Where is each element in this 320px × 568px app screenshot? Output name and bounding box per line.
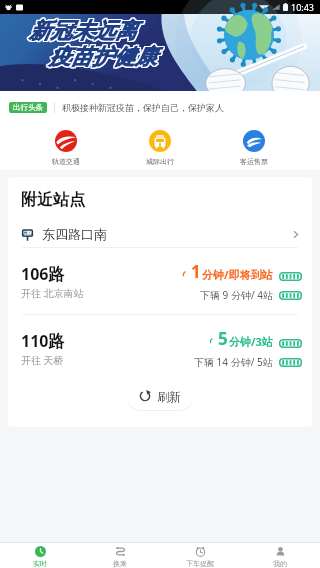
staticText: 新冠未远离	[29, 18, 137, 45]
staticText: 疫苗护健康	[49, 44, 157, 71]
staticText: 积极接种新冠疫苗，保护自己，保护家人	[62, 102, 224, 113]
staticText: 疫苗护健康	[50, 42, 158, 69]
staticText: 新冠未远离	[29, 17, 137, 44]
staticText: 新冠未远离	[30, 18, 138, 45]
button[interactable]: 客运售票	[226, 123, 282, 166]
staticText: 新冠未远离	[28, 16, 136, 43]
staticText: 出行头条	[13, 103, 43, 112]
staticText: 分钟/3站	[229, 334, 273, 349]
staticText: 1	[191, 260, 201, 283]
staticText: 疫苗护健康	[48, 43, 156, 70]
staticText: 106路	[21, 263, 65, 285]
button[interactable]: 出行头条	[0, 91, 320, 123]
staticText: 10:43	[291, 1, 315, 13]
staticText: 新冠未远离	[29, 16, 137, 43]
staticText: 分钟/即将到站	[202, 267, 273, 282]
staticText: 开往 北京南站	[21, 286, 84, 300]
staticText: 轨道交通	[52, 157, 80, 166]
staticText: 疫苗护健康	[48, 42, 156, 69]
button[interactable]: 东四路口南	[8, 223, 312, 245]
staticText: 实时	[33, 559, 47, 568]
staticText: 疫苗护健康	[49, 43, 157, 70]
staticText: 附近站点	[21, 190, 85, 210]
staticText: 下辆 9 分钟/ 4站	[200, 288, 273, 302]
staticText: 下辆 14 分钟/ 5站	[194, 355, 273, 369]
button[interactable]: 110路	[8, 315, 312, 381]
staticText: 新冠未远离	[30, 16, 138, 43]
button[interactable]: 实时	[0, 543, 80, 568]
button[interactable]: 城际出行	[132, 123, 188, 166]
staticText: 新冠未远离	[28, 18, 136, 45]
staticText: 东四路口南	[42, 226, 107, 242]
button[interactable]: 刷新	[127, 382, 193, 410]
staticText: 疫苗护健康	[50, 44, 158, 71]
staticText: 5	[218, 327, 228, 350]
button[interactable]: 下车提醒	[160, 543, 240, 568]
staticText: 疫苗护健康	[50, 43, 158, 70]
staticText: 110路	[21, 330, 65, 352]
staticText: 换乘	[113, 559, 127, 568]
staticText: 客运售票	[240, 157, 268, 166]
button[interactable]: 换乘	[80, 543, 160, 568]
button[interactable]: 轨道交通	[38, 123, 94, 166]
staticText: 城际出行	[146, 157, 174, 166]
staticText: 疫苗护健康	[49, 42, 157, 69]
staticText: 我的	[273, 559, 287, 568]
staticText: 新冠未远离	[28, 17, 136, 44]
button[interactable]: 106路	[8, 248, 312, 314]
staticText: 新冠未远离	[30, 17, 138, 44]
staticText: 刷新	[157, 389, 181, 404]
staticText: 下车提醒	[186, 559, 214, 568]
button[interactable]: 我的	[240, 543, 320, 568]
staticText: 开往 天桥	[21, 353, 64, 367]
staticText: 疫苗护健康	[48, 44, 156, 71]
